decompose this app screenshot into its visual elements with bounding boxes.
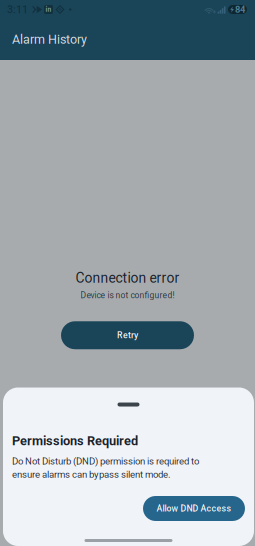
staticText: ensure alarms can bypass silent mode.: [12, 469, 171, 480]
staticText: in: [45, 6, 51, 13]
button[interactable]: Allow DND Access: [143, 496, 245, 521]
staticText: Alarm History: [12, 32, 87, 47]
staticText: Do Not Disturb (DND) permission is requi…: [12, 455, 199, 467]
staticText: 3:11: [7, 3, 28, 16]
staticText: Retry: [117, 330, 138, 340]
staticText: Device is not configured!: [80, 290, 174, 300]
staticText: Connection error: [75, 270, 179, 286]
staticText: Permissions Required: [12, 433, 138, 448]
staticText: 84: [235, 4, 245, 15]
button[interactable]: Retry: [61, 321, 194, 349]
staticText: Allow DND Access: [156, 503, 231, 514]
